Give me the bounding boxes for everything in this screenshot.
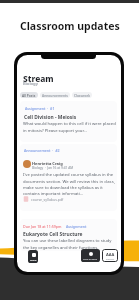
button[interactable]: All Posts: [20, 92, 38, 98]
staticText: I've posted the updated course syllabus …: [23, 172, 116, 196]
staticText: Due Jan 18 at 11:59pm: [23, 224, 62, 229]
button[interactable]: [20, 144, 117, 211]
button[interactable]: Attach: [28, 250, 38, 263]
staticText: Display: [106, 257, 115, 260]
staticText: Stream: [23, 73, 54, 84]
staticText: Classroom updates: [20, 19, 120, 33]
staticText: Classwork: [74, 93, 90, 97]
staticText: Turn in work: [83, 257, 98, 260]
staticText: All Posts: [22, 93, 36, 97]
staticText: You can use these labelled diagrams to s…: [23, 238, 116, 250]
staticText: Eukaryote Cell Structure: [23, 231, 83, 238]
staticText: Assignment · #1: [25, 106, 55, 111]
staticText: Cell Division - Meiosis: [24, 114, 77, 121]
button[interactable]: [20, 101, 117, 142]
staticText: course_syllabus.pdf: [31, 197, 64, 202]
staticText: Biology · Jan 16 at 9:41 AM: [32, 166, 74, 170]
staticText: What would happen to this cell if it wer…: [23, 121, 116, 133]
button[interactable]: Display size: [102, 249, 118, 262]
staticText: Share: [30, 258, 37, 261]
button[interactable]: Announcements: [40, 92, 70, 98]
staticText: Henrietta Craig: [32, 161, 63, 166]
button[interactable]: course_syllabus.pdf: [23, 196, 64, 202]
button[interactable]: Turn in: [81, 249, 100, 262]
button[interactable]: [20, 219, 117, 251]
staticText: Announcements: [42, 93, 68, 97]
staticText: AAA: [106, 252, 115, 257]
staticText: Announcement · #2: [24, 148, 60, 153]
staticText: Assignment: [66, 224, 87, 229]
staticText: Biology: [23, 81, 38, 87]
button[interactable]: Classwork: [72, 92, 92, 98]
